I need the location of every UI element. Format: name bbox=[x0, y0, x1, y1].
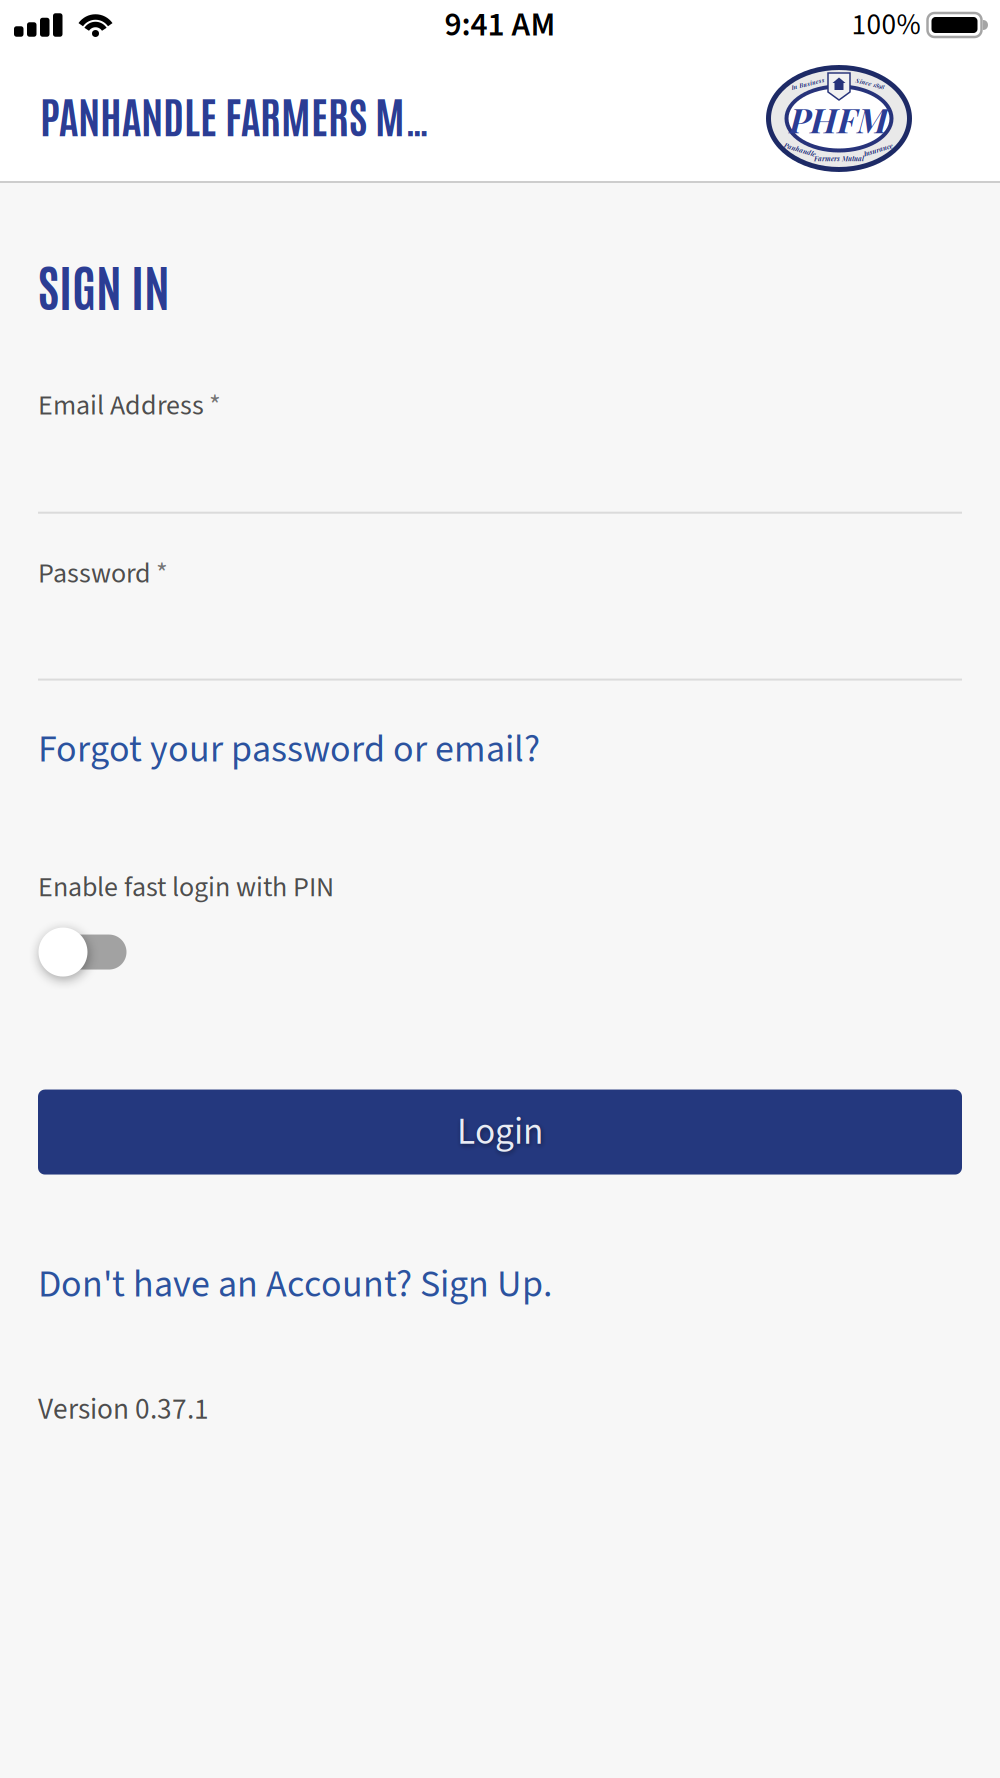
staticText: PHFM bbox=[789, 97, 888, 142]
staticText: * bbox=[156, 554, 168, 594]
staticText: Version 0.37.1 bbox=[38, 1389, 209, 1430]
staticText: Panhandle bbox=[783, 145, 816, 154]
staticText: Farmers Mutual bbox=[814, 154, 864, 163]
staticText: Email Address bbox=[38, 386, 204, 426]
staticText: 100% bbox=[851, 4, 920, 46]
button[interactable] bbox=[38, 928, 126, 977]
staticText: * bbox=[209, 386, 221, 426]
staticText: Password bbox=[38, 554, 151, 594]
staticText: Since 1898 bbox=[855, 79, 884, 87]
button[interactable]: Password bbox=[38, 554, 962, 681]
button[interactable]: Don't have an Account? Sign Up. bbox=[38, 1258, 552, 1312]
button[interactable]: Email Address bbox=[38, 386, 962, 514]
staticText: In Business bbox=[791, 79, 825, 87]
staticText: Forgot your password or email? bbox=[38, 723, 540, 777]
staticText: Enable fast login with PIN bbox=[38, 868, 334, 908]
staticText: Login bbox=[457, 1105, 543, 1159]
staticText: PANHANDLE FARMERS M… bbox=[40, 87, 430, 142]
staticText: Insurance bbox=[863, 145, 893, 154]
button[interactable]: Login bbox=[38, 1090, 962, 1175]
staticText: SIGN IN bbox=[38, 253, 170, 317]
staticText: Don't have an Account? Sign Up. bbox=[38, 1258, 552, 1312]
button[interactable]: Forgot your password or email? bbox=[38, 723, 540, 777]
staticText: 9:41 AM bbox=[444, 1, 555, 49]
